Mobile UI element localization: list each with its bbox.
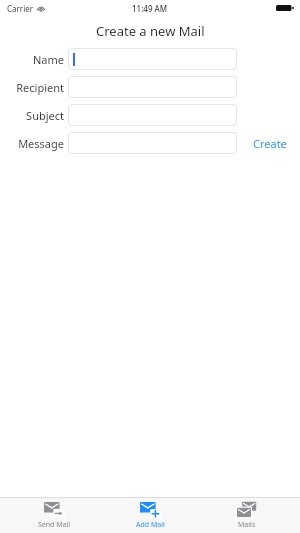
- button[interactable]: [68, 48, 237, 70]
- button[interactable]: [68, 104, 237, 126]
- staticText: Send Mail: [38, 520, 71, 530]
- staticText: Subject: [26, 108, 64, 123]
- staticText: Carrier: [7, 3, 34, 14]
- button[interactable]: [68, 76, 237, 98]
- staticText: Mails: [238, 520, 256, 530]
- staticText: Create: [253, 136, 287, 151]
- button[interactable]: Mails: [204, 501, 290, 530]
- button[interactable]: Create: [251, 134, 289, 153]
- button[interactable]: Add Mail: [107, 501, 193, 530]
- staticText: Create a new Mail: [96, 22, 205, 40]
- staticText: Recipient: [16, 80, 64, 95]
- staticText: Add Mail: [136, 520, 165, 530]
- staticText: Name: [32, 52, 64, 67]
- button[interactable]: Send Mail: [11, 501, 97, 530]
- staticText: 11:49 AM: [132, 3, 168, 14]
- staticText: Message: [18, 136, 64, 151]
- button[interactable]: [68, 132, 237, 154]
